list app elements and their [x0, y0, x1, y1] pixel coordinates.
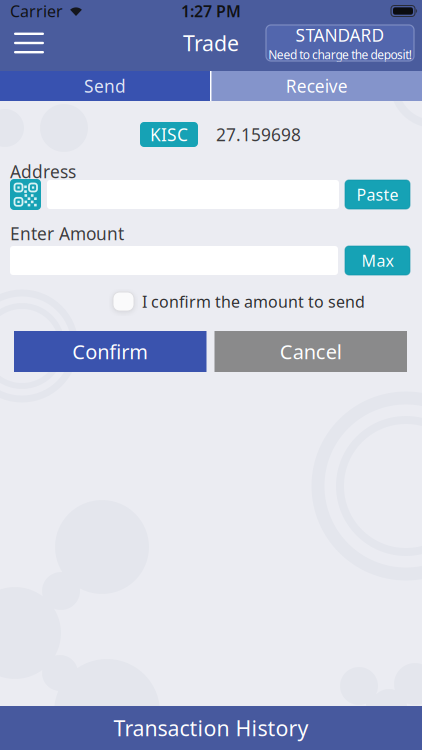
button[interactable]: Max	[345, 246, 410, 275]
staticText: 1:27 PM	[181, 0, 241, 22]
staticText: Enter Amount	[10, 222, 124, 245]
staticText: Paste	[356, 184, 398, 205]
button[interactable]: Menu	[0, 25, 44, 61]
button[interactable]: STANDARD	[266, 25, 422, 61]
button[interactable]: Transaction History	[0, 706, 422, 750]
button[interactable]: Cancel	[214, 331, 407, 372]
staticText: Receive	[286, 74, 348, 97]
staticText: Send	[84, 74, 126, 97]
button[interactable]: Scan QR code	[10, 179, 41, 210]
staticText: Need to charge the deposit!	[268, 46, 412, 62]
button[interactable]: Receive	[211, 71, 422, 101]
staticText: KISC	[150, 123, 188, 146]
staticText: 27.159698	[216, 123, 301, 146]
staticText: Carrier	[10, 0, 63, 22]
staticText: I confirm the amount to send	[142, 291, 365, 312]
staticText: Max	[361, 250, 393, 271]
staticText: Confirm	[72, 338, 148, 365]
staticText: STANDARD	[295, 23, 384, 46]
button[interactable]: Send	[0, 71, 210, 101]
button[interactable]: KISC	[140, 122, 198, 147]
staticText: Address	[10, 160, 76, 183]
staticText: Cancel	[280, 338, 342, 365]
staticText: Trade	[183, 29, 239, 57]
button[interactable]: Paste	[345, 180, 410, 209]
staticText: Transaction History	[113, 714, 308, 742]
button[interactable]: I confirm the amount to send	[113, 292, 365, 311]
button[interactable]: Confirm	[14, 331, 206, 372]
